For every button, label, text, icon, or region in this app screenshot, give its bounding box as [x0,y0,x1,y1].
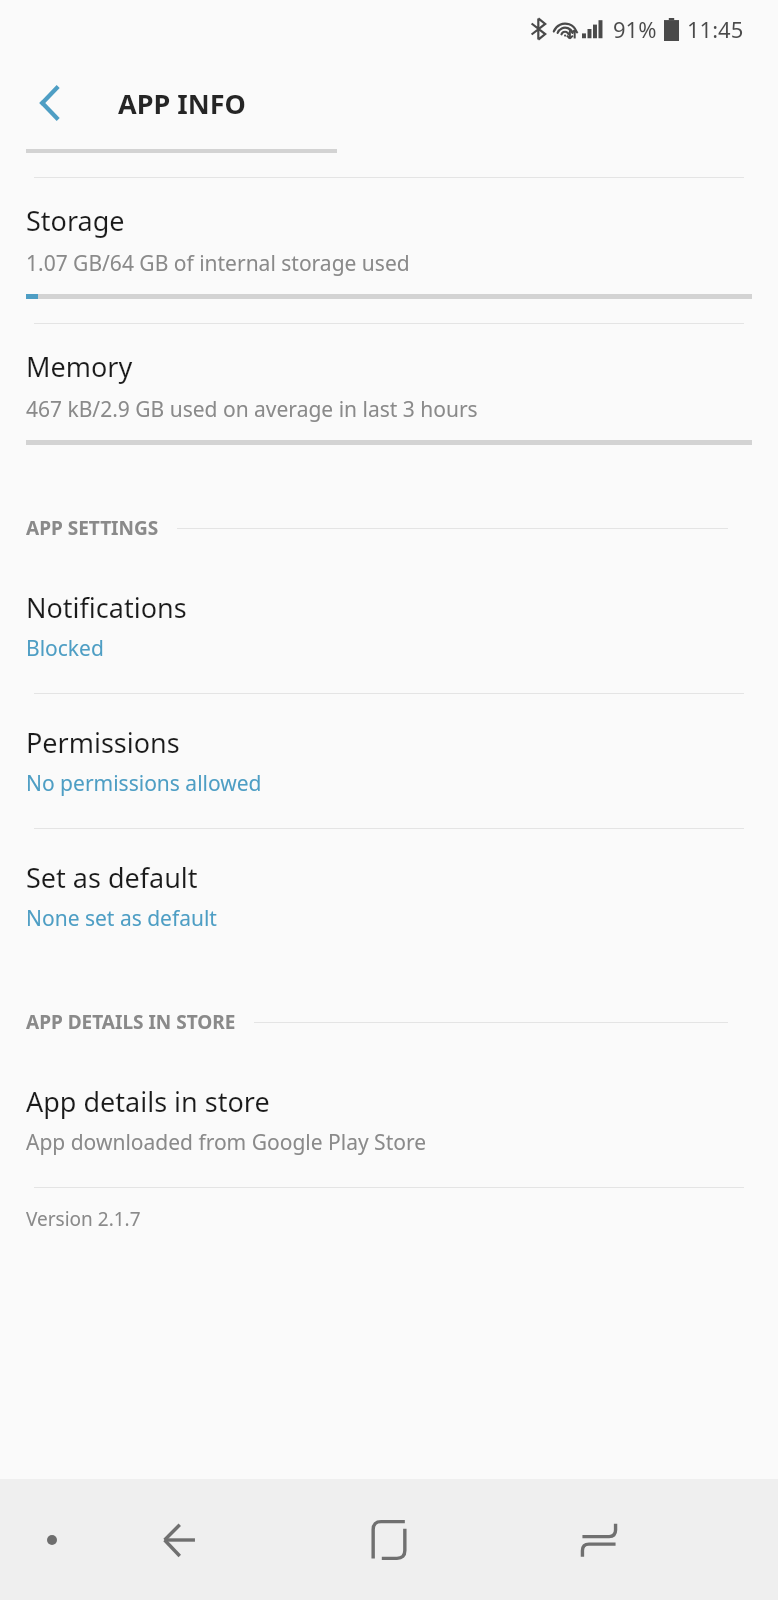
staticText: Storage [26,202,125,239]
staticText: 11:45 [687,14,744,44]
staticText: 91% [613,14,657,44]
button[interactable]: Home [346,1497,432,1583]
button[interactable]: Notifications [0,559,778,693]
staticText: Notifications [26,589,187,626]
staticText: Blocked [26,634,104,663]
staticText: None set as default [26,904,217,933]
staticText: App details in store [26,1083,270,1120]
staticText: No permissions allowed [26,769,262,798]
button[interactable]: Recent apps [556,1497,642,1583]
staticText: APP SETTINGS [26,515,159,541]
staticText: 467 kB/2.9 GB used on average in last 3 … [26,395,478,424]
button[interactable]: Storage [0,178,778,323]
staticText: Permissions [26,724,180,761]
button[interactable]: Memory [0,324,778,469]
staticText: 1.07 GB/64 GB of internal storage used [26,249,410,278]
staticText: Version 2.1.7 [26,1206,141,1232]
button[interactable]: Back [22,75,78,131]
staticText: Memory [26,348,133,385]
staticText: App downloaded from Google Play Store [26,1128,427,1157]
button[interactable]: App details in store [0,1053,778,1187]
staticText: APP INFO [118,85,246,122]
button[interactable]: Back [136,1497,222,1583]
button[interactable]: Show keyboard [30,1518,74,1562]
staticText: APP DETAILS IN STORE [26,1009,236,1035]
staticText: Set as default [26,859,198,896]
button[interactable]: Permissions [0,694,778,828]
button[interactable]: Set as default [0,829,778,963]
